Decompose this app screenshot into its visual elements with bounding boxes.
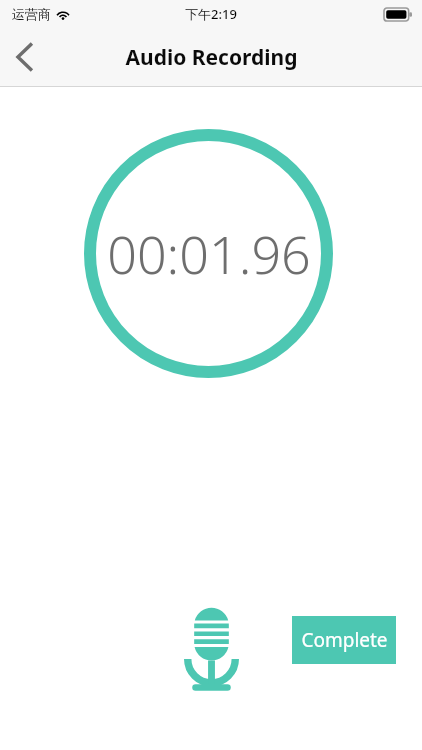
- staticText: 00:01.96: [107, 218, 311, 289]
- staticText: Audio Recording: [125, 43, 298, 72]
- staticText: 下午2:19: [185, 5, 237, 23]
- button[interactable]: Record: [184, 606, 239, 694]
- staticText: Complete: [301, 627, 388, 653]
- staticText: 运营商: [12, 6, 51, 22]
- button[interactable]: Back: [0, 33, 48, 81]
- button[interactable]: Complete: [292, 616, 396, 664]
